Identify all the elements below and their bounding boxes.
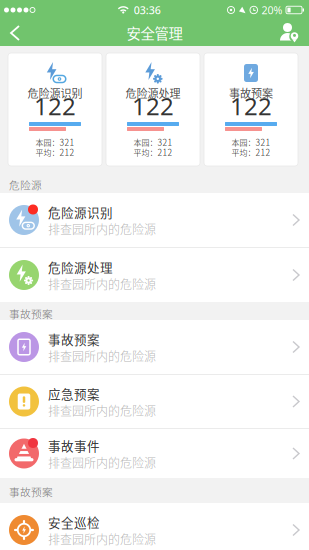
button[interactable]: 危险源处理: [0, 248, 309, 302]
staticText: 本园：321: [133, 136, 172, 148]
staticText: 122: [132, 90, 174, 122]
staticText: 122: [34, 90, 76, 122]
button[interactable]: 事故预案: [204, 53, 298, 166]
staticText: 危险源处理: [125, 85, 180, 101]
staticText: 03:36: [134, 3, 161, 17]
staticText: 本园：321: [35, 136, 74, 148]
staticText: 平均：212: [133, 146, 172, 158]
button[interactable]: 危险源识别: [0, 193, 309, 247]
staticText: 本园：321: [231, 136, 270, 148]
staticText: 事故预案: [48, 330, 100, 348]
staticText: 122: [230, 90, 272, 122]
staticText: 危险源识别: [27, 85, 82, 101]
staticText: 危险源识别: [48, 203, 113, 221]
button[interactable]: 应急预案: [0, 375, 309, 428]
staticText: 应急预案: [48, 384, 100, 402]
staticText: 事故事件: [48, 436, 100, 454]
staticText: 安全巡检: [48, 513, 100, 531]
staticText: 安全管理: [126, 23, 182, 43]
staticText: 平均：212: [35, 146, 74, 158]
button[interactable]: 危险源处理: [106, 53, 200, 166]
button[interactable]: 安全巡检: [0, 503, 309, 550]
staticText: 排查园所内的危险源: [48, 402, 156, 419]
button[interactable]: 事故事件: [0, 429, 309, 478]
staticText: 危险源处理: [48, 258, 113, 276]
staticText: 事故预案: [229, 85, 273, 101]
staticText: 平均：212: [231, 146, 270, 158]
button[interactable]: Back: [0, 20, 29, 46]
staticText: 事故预案: [9, 484, 53, 499]
staticText: 事故预案: [9, 306, 53, 321]
staticText: 排查园所内的危险源: [48, 220, 156, 238]
staticText: 排查园所内的危险源: [48, 275, 156, 293]
staticText: 排查园所内的危险源: [48, 530, 156, 548]
button[interactable]: Contacts: [277, 20, 309, 46]
staticText: 20%: [261, 3, 282, 17]
staticText: 危险源: [9, 177, 42, 192]
button[interactable]: 危险源识别: [8, 53, 102, 166]
staticText: 排查园所内的危险源: [48, 347, 156, 365]
button[interactable]: 事故预案: [0, 320, 309, 374]
staticText: 排查园所内的危险源: [48, 454, 156, 471]
